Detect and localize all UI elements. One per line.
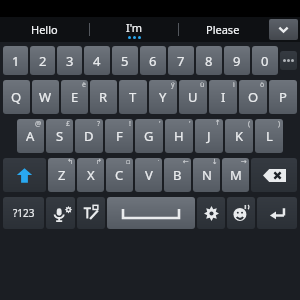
staticText: E: [71, 88, 79, 106]
button[interactable]: Q: [3, 80, 30, 114]
button[interactable]: J: [195, 119, 223, 153]
staticText: O: [248, 88, 259, 106]
button[interactable]: 4: [84, 46, 110, 75]
button[interactable]: ?123: [3, 197, 44, 229]
button[interactable]: 1: [3, 46, 28, 75]
staticText: P: [279, 88, 287, 106]
staticText: U: [188, 88, 198, 106]
button[interactable]: E: [61, 80, 88, 114]
staticText: 2: [39, 52, 47, 70]
button[interactable]: L: [255, 119, 283, 153]
staticText: R: [99, 88, 108, 106]
staticText: ↓: [212, 158, 218, 166]
button[interactable]: 6: [140, 46, 166, 75]
button[interactable]: W: [32, 80, 59, 114]
button[interactable]: Voice input: [46, 197, 75, 229]
staticText: ▫: [126, 158, 131, 166]
button[interactable]: O: [239, 80, 267, 114]
button[interactable]: U: [179, 80, 207, 114]
button[interactable]: 8: [196, 46, 222, 75]
staticText: X: [87, 166, 95, 184]
staticText: N: [202, 166, 212, 184]
button[interactable]: S: [46, 119, 73, 153]
button[interactable]: B: [164, 158, 191, 192]
staticText: L: [266, 127, 273, 145]
button[interactable]: More symbols: [280, 51, 297, 70]
staticText: 4: [93, 52, 101, 70]
button[interactable]: 9: [224, 46, 250, 75]
staticText: ↱: [96, 158, 102, 166]
button[interactable]: M: [222, 158, 249, 192]
staticText: ò: [260, 80, 265, 90]
button[interactable]: I'm: [90, 17, 178, 42]
staticText: A: [26, 127, 35, 145]
staticText: ': [189, 119, 191, 129]
staticText: H: [174, 127, 184, 145]
staticText: 1: [12, 52, 20, 70]
button[interactable]: C: [106, 158, 133, 192]
staticText: G: [144, 127, 154, 145]
staticText: Please: [206, 22, 240, 37]
staticText: D: [84, 127, 94, 145]
button[interactable]: Enter: [257, 197, 297, 229]
staticText: 5: [121, 52, 129, 70]
staticText: J: [207, 127, 211, 145]
button[interactable]: 0: [252, 46, 278, 75]
staticText: Hello: [31, 22, 58, 37]
staticText: ←: [183, 158, 189, 166]
button[interactable]: Z: [48, 158, 75, 192]
button[interactable]: X: [77, 158, 104, 192]
button[interactable]: Emoji: [227, 197, 255, 229]
staticText: B: [173, 166, 182, 184]
staticText: ý: [171, 80, 175, 90]
button[interactable]: Y: [149, 80, 177, 114]
button[interactable]: F: [105, 119, 133, 153]
button[interactable]: I: [209, 80, 237, 114]
staticText: ↑: [215, 119, 221, 127]
staticText: ?: [97, 119, 101, 129]
button[interactable]: V: [135, 158, 162, 192]
button[interactable]: D: [75, 119, 103, 153]
staticText: I'm: [126, 20, 143, 35]
button[interactable]: N: [193, 158, 220, 192]
staticText: I: [221, 88, 226, 106]
button[interactable]: Settings: [197, 197, 225, 229]
button[interactable]: Please: [179, 17, 267, 42]
staticText: @: [35, 119, 42, 129]
staticText: C: [115, 166, 124, 184]
staticText: T: [129, 88, 137, 106]
staticText: 8: [205, 52, 213, 70]
staticText: ↰: [67, 158, 73, 166]
button[interactable]: 2: [30, 46, 55, 75]
staticText: V: [145, 166, 153, 184]
staticText: 7: [177, 52, 185, 70]
button[interactable]: R: [90, 80, 117, 114]
button[interactable]: Handwriting: [77, 197, 105, 229]
staticText: 6: [149, 52, 157, 70]
button[interactable]: K: [225, 119, 253, 153]
button[interactable]: Backspace: [251, 158, 297, 192]
staticText: M: [230, 166, 242, 184]
staticText: 0: [261, 52, 269, 70]
button[interactable]: 7: [168, 46, 194, 75]
staticText: ?123: [13, 206, 35, 220]
staticText: ì: [233, 80, 235, 90]
staticText: F: [116, 127, 123, 145]
button[interactable]: Hello: [0, 17, 89, 42]
staticText: ˙: [158, 158, 160, 168]
button[interactable]: Expand suggestions: [269, 19, 298, 40]
button[interactable]: Shift: [3, 158, 46, 192]
button[interactable]: P: [269, 80, 297, 114]
staticText: ): [278, 119, 281, 129]
button[interactable]: Space: [107, 197, 195, 229]
staticText: ù: [200, 80, 205, 90]
button[interactable]: A: [17, 119, 44, 153]
staticText: W: [39, 88, 52, 106]
button[interactable]: 3: [57, 46, 82, 75]
button[interactable]: T: [119, 80, 147, 114]
button[interactable]: G: [135, 119, 163, 153]
staticText: ': [159, 119, 161, 129]
button[interactable]: H: [165, 119, 193, 153]
button[interactable]: 5: [112, 46, 138, 75]
staticText: £: [66, 119, 71, 129]
